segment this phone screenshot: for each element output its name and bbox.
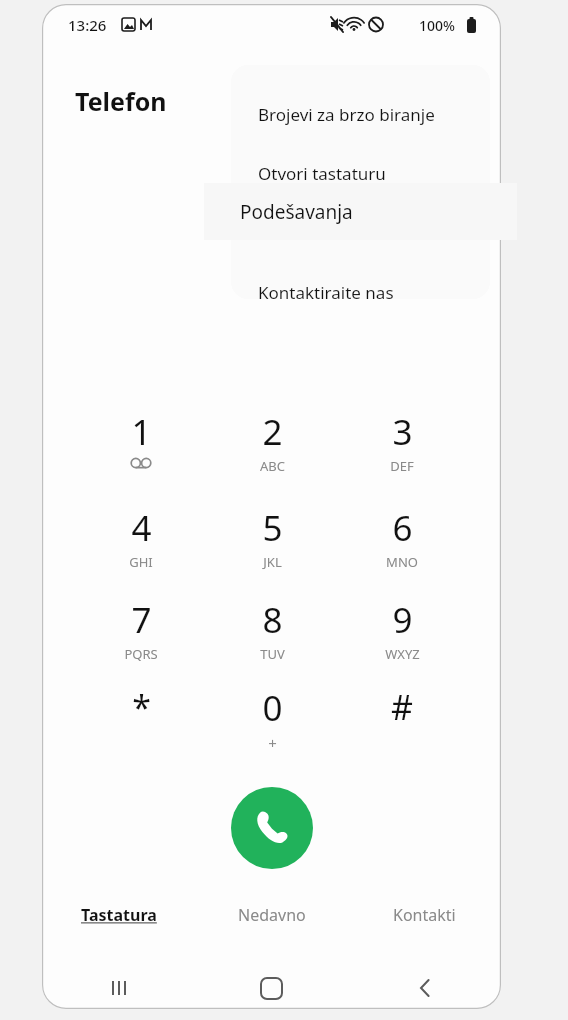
button[interactable]: 2 — [226, 408, 318, 492]
staticText: TUV — [260, 645, 285, 663]
staticText: Kontaktirajte nas — [258, 281, 394, 299]
button[interactable]: 5 — [226, 504, 318, 588]
button[interactable]: 9 — [356, 596, 448, 680]
staticText: 1 — [131, 408, 152, 456]
staticText: 5 — [262, 504, 283, 552]
button[interactable]: Brojevi za brzo biranje — [231, 92, 490, 136]
button[interactable]: Tastatura — [42, 904, 195, 952]
staticText: Nedavno — [238, 904, 306, 926]
button[interactable]: 1 — [95, 408, 187, 492]
button[interactable]: Kontakti — [348, 904, 501, 952]
staticText: Otvori tastaturu — [258, 162, 386, 185]
staticText: DEF — [390, 457, 414, 475]
button[interactable]: 3 — [356, 408, 448, 492]
staticText: 8 — [262, 596, 283, 644]
staticText: GHI — [129, 553, 153, 571]
staticText: + — [268, 733, 277, 753]
staticText: JKL — [263, 553, 282, 571]
button[interactable]: 7 — [95, 596, 187, 680]
staticText: 13:26 — [68, 15, 107, 35]
button[interactable]: 0 — [226, 684, 318, 768]
button[interactable]: Call — [231, 787, 313, 869]
button[interactable]: # — [356, 684, 448, 768]
staticText: * — [132, 684, 151, 730]
staticText: # — [391, 684, 413, 730]
staticText: 4 — [131, 504, 152, 552]
staticText: 100% — [419, 16, 455, 35]
button[interactable]: Home — [195, 967, 348, 1009]
button[interactable]: 4 — [95, 504, 187, 588]
button[interactable]: * — [95, 684, 187, 768]
staticText: 2 — [262, 408, 283, 456]
staticText: 0 — [262, 684, 283, 732]
staticText: MNO — [386, 553, 418, 571]
button[interactable]: Recents — [42, 967, 195, 1009]
staticText: Telefon — [75, 84, 167, 118]
staticText: Podešavanja — [240, 199, 353, 225]
staticText: Brojevi za brzo biranje — [258, 103, 435, 126]
button[interactable]: 8 — [226, 596, 318, 680]
staticText: WXYZ — [385, 645, 420, 663]
staticText: ABC — [260, 457, 285, 475]
staticText: Kontakti — [393, 904, 456, 926]
button[interactable]: Kontaktirajte nas — [231, 270, 490, 299]
staticText: Tastatura — [81, 904, 157, 926]
button[interactable]: Podešavanja — [204, 183, 517, 240]
button[interactable]: Otvori tastaturu — [231, 151, 490, 195]
staticText: 3 — [392, 408, 413, 456]
button[interactable]: 6 — [356, 504, 448, 588]
staticText: 7 — [131, 596, 152, 644]
button[interactable]: Back — [348, 967, 501, 1009]
button[interactable]: Nedavno — [195, 904, 348, 952]
staticText: 9 — [392, 596, 413, 644]
staticText: PQRS — [124, 645, 158, 663]
staticText: 6 — [392, 504, 413, 552]
